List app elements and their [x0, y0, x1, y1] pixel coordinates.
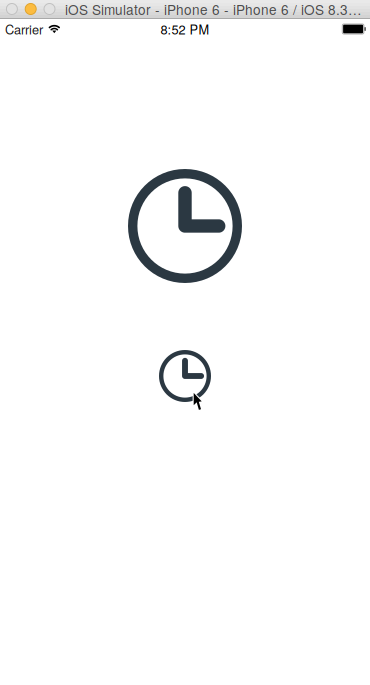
button[interactable]: Close window — [6, 3, 17, 14]
staticText: iOS Simulator - iPhone 6 - iPhone 6 / iO… — [65, 0, 362, 19]
staticText: Carrier — [5, 20, 43, 38]
button[interactable]: Zoom window — [44, 3, 55, 14]
staticText: 8:52 PM — [160, 20, 209, 38]
button[interactable]: Minimize window — [25, 3, 36, 14]
